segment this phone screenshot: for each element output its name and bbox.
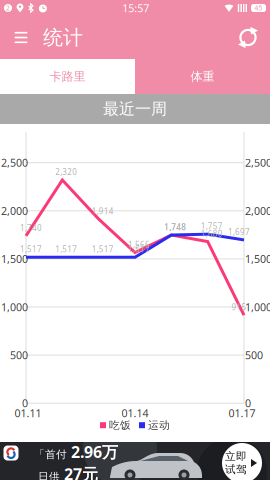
staticText: 2,000: [1, 204, 28, 218]
button[interactable]: Refresh: [237, 26, 270, 48]
staticText: 500: [245, 348, 263, 362]
staticText: 1,697: [228, 227, 250, 237]
staticText: 01.14: [121, 406, 148, 420]
button[interactable]: 卡路里: [0, 59, 135, 94]
staticText: 0: [245, 396, 251, 410]
staticText: 2,000: [245, 204, 270, 218]
staticText: 27元: [64, 463, 98, 480]
staticText: 1,680: [201, 228, 223, 239]
button[interactable]: Advertisement: [0, 442, 270, 480]
staticText: 最近一周: [103, 99, 167, 119]
staticText: 1,740: [20, 222, 42, 233]
staticText: 1,566: [128, 239, 150, 250]
staticText: 试驾: [225, 463, 247, 476]
staticText: 15:57: [122, 1, 149, 15]
staticText: 吃饭: [109, 419, 131, 432]
staticText: 日供: [38, 470, 60, 480]
staticText: 1,748: [164, 222, 186, 232]
staticText: 2,500: [1, 156, 28, 170]
staticText: 统计: [43, 25, 83, 50]
staticText: 45: [254, 4, 262, 12]
staticText: 1,914: [92, 206, 114, 216]
staticText: 体重: [190, 69, 214, 84]
button[interactable]: Menu: [0, 27, 35, 47]
staticText: 2,320: [55, 167, 77, 177]
staticText: 500: [10, 348, 28, 362]
staticText: 01.11: [14, 406, 41, 420]
staticText: 「首付: [34, 448, 67, 461]
staticText: 2: [6, 4, 10, 12]
staticText: 运动: [148, 419, 170, 432]
staticText: 卡路里: [49, 69, 85, 84]
button[interactable]: 体重: [135, 59, 270, 94]
staticText: 1,000: [245, 300, 270, 314]
staticText: 2.96万: [71, 441, 118, 462]
staticText: 立即: [225, 450, 247, 463]
staticText: 0: [22, 396, 28, 410]
staticText: 2,500: [245, 156, 270, 170]
staticText: 1,517: [55, 244, 77, 255]
staticText: 915: [231, 302, 246, 312]
staticText: 1,500: [1, 252, 28, 266]
staticText: 1,517: [128, 244, 150, 255]
staticText: 01.17: [228, 406, 255, 420]
staticText: 1,500: [245, 252, 270, 266]
staticText: 1,748: [164, 222, 186, 232]
staticText: 1,000: [1, 300, 28, 314]
staticText: 1,517: [20, 244, 42, 255]
staticText: 1,517: [92, 244, 114, 255]
staticText: 1,757: [201, 221, 223, 231]
